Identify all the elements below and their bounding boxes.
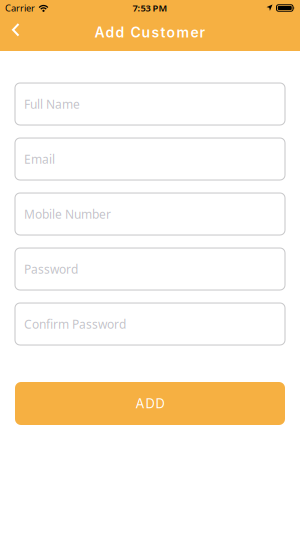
button[interactable]: Full Name text field [15,83,285,125]
staticText: Carrier [5,2,35,14]
button[interactable]: ADD [15,382,285,425]
staticText: Confirm Password [24,316,126,332]
button[interactable]: Back [0,24,20,43]
staticText: Password [24,261,78,277]
button[interactable]: Confirm Password text field [15,303,285,345]
staticText: Mobile Number [24,206,111,222]
button[interactable]: Password text field [15,248,285,290]
button[interactable]: Email text field [15,138,285,180]
staticText: Email [24,151,55,167]
staticText: Add Customer [94,24,205,41]
button[interactable]: Mobile Number text field [15,193,285,235]
staticText: ADD [135,396,164,411]
staticText: 7:53 PM [132,2,167,14]
staticText: Full Name [24,96,80,112]
